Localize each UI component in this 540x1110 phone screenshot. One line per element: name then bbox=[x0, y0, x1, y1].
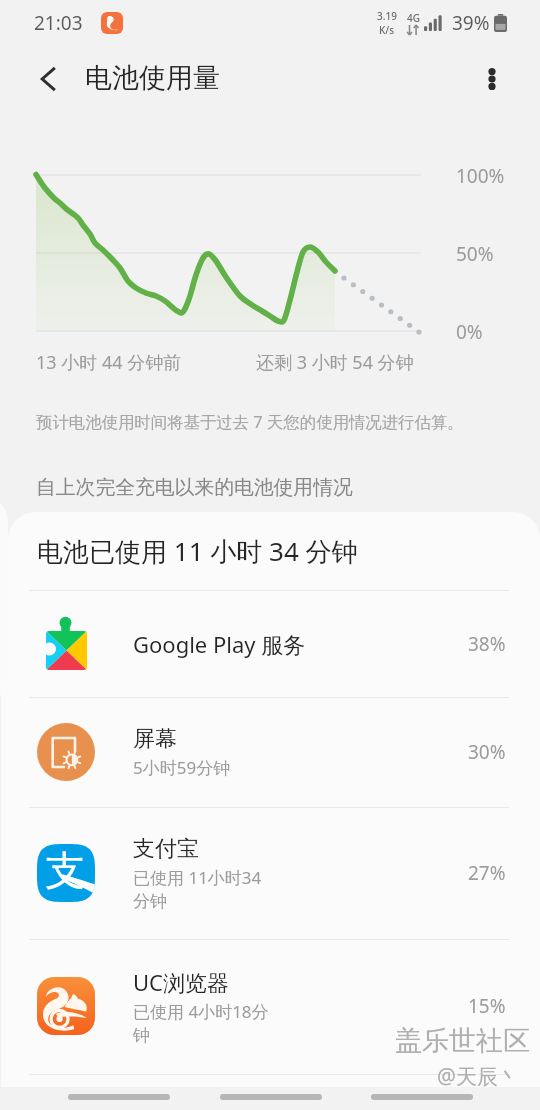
button[interactable]: Google Play 服务 bbox=[8, 590, 540, 697]
staticText: 已使用 11小时34 分钟 bbox=[133, 866, 262, 912]
staticText: 50% bbox=[456, 241, 494, 267]
staticText: 15% bbox=[468, 993, 506, 1019]
button[interactable]: Navigation bbox=[352, 1084, 491, 1110]
staticText: 支 bbox=[45, 845, 85, 895]
staticText: 自上次完全充电以来的电池使用情况 bbox=[36, 475, 353, 500]
staticText: UC浏览器 bbox=[133, 967, 229, 997]
staticText: 支付宝 bbox=[133, 835, 199, 863]
staticText: @天辰丶 bbox=[437, 1062, 519, 1091]
button[interactable]: More options bbox=[468, 55, 516, 103]
staticText: 还剩 3 小时 54 分钟 bbox=[256, 350, 414, 375]
button[interactable]: Back bbox=[23, 55, 71, 103]
staticText: 0% bbox=[456, 319, 483, 345]
button[interactable]: 屏幕 bbox=[8, 697, 540, 807]
button[interactable]: Navigation bbox=[49, 1084, 188, 1110]
button[interactable]: Navigation bbox=[201, 1084, 340, 1110]
staticText: 3.19 bbox=[377, 9, 397, 23]
staticText: 30% bbox=[468, 739, 506, 765]
staticText: Google Play 服务 bbox=[133, 629, 306, 659]
staticText: 盖乐世社区 bbox=[395, 1024, 530, 1058]
staticText: 预计电池使用时间将基于过去 7 天您的使用情况进行估算。 bbox=[36, 410, 464, 432]
staticText: 电池已使用 11 小时 34 分钟 bbox=[37, 533, 358, 569]
staticText: 39% bbox=[452, 10, 490, 36]
staticText: 100% bbox=[456, 163, 505, 189]
staticText: K/s bbox=[379, 23, 395, 37]
button[interactable]: 支 bbox=[8, 807, 540, 939]
staticText: 27% bbox=[468, 860, 506, 886]
staticText: 电池使用量 bbox=[85, 61, 220, 95]
staticText: 4G bbox=[407, 11, 420, 25]
staticText: 21:03 bbox=[34, 10, 83, 36]
staticText: 38% bbox=[468, 631, 506, 657]
staticText: 13 小时 44 分钟前 bbox=[36, 350, 182, 375]
button[interactable]: UC浏览器 bbox=[8, 939, 540, 1073]
staticText: 5小时59分钟 bbox=[133, 756, 231, 779]
staticText: 已使用 4小时18分 钟 bbox=[133, 1000, 269, 1046]
staticText: 屏幕 bbox=[133, 725, 177, 753]
